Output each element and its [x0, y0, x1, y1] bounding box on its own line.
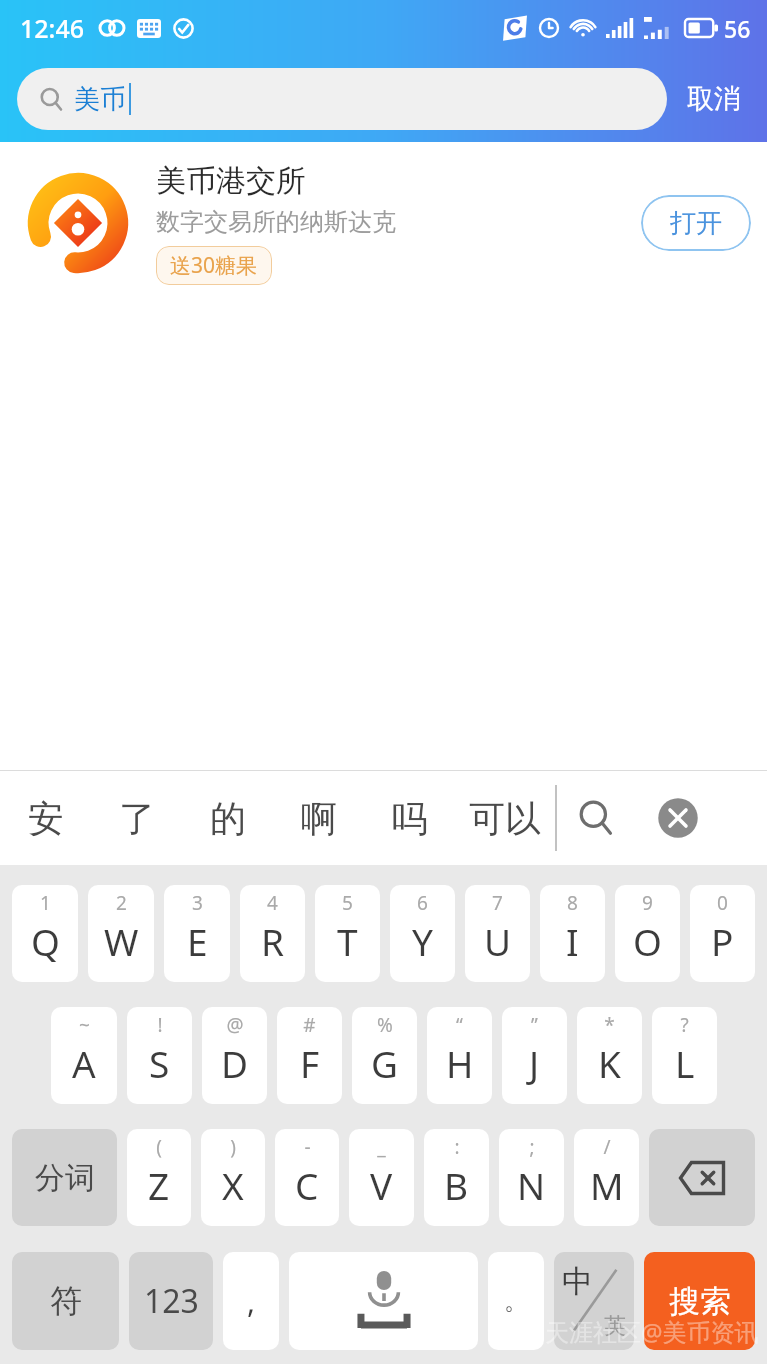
button[interactable]: 9 — [615, 885, 680, 982]
staticText: 啊 — [301, 796, 337, 841]
staticText: ) — [230, 1134, 236, 1160]
staticText: 取消 — [687, 82, 741, 116]
button[interactable]: 7 — [465, 885, 530, 982]
button[interactable]: 了 — [91, 771, 182, 865]
button[interactable]: % — [352, 1007, 417, 1104]
button[interactable]: 分词 — [12, 1129, 117, 1226]
button[interactable]: 美币 — [17, 68, 667, 130]
staticText: 英 — [604, 1312, 626, 1340]
button[interactable]: @ — [202, 1007, 267, 1104]
staticText: 安 — [28, 796, 64, 841]
staticText: S — [149, 1038, 170, 1088]
staticText: 12:46 — [20, 11, 85, 45]
staticText: 0 — [717, 890, 728, 916]
button[interactable]: _ — [349, 1129, 414, 1226]
button[interactable]: 吗 — [364, 771, 455, 865]
button[interactable]: : — [424, 1129, 489, 1226]
staticText: E — [187, 916, 208, 966]
button[interactable]: 打开 — [641, 195, 751, 251]
staticText: 2 — [116, 890, 127, 916]
button[interactable]: 6 — [390, 885, 455, 982]
staticText: 56 — [724, 13, 751, 44]
staticText: “ — [456, 1012, 463, 1038]
button[interactable]: Clear input — [635, 771, 721, 865]
button[interactable]: 取消 — [681, 76, 747, 122]
button[interactable]: ! — [127, 1007, 192, 1104]
button[interactable]: 。 — [488, 1252, 544, 1350]
button[interactable]: 符 — [12, 1252, 119, 1350]
staticText: D — [221, 1038, 249, 1088]
staticText: 中 — [562, 1262, 593, 1301]
staticText: H — [446, 1038, 474, 1088]
staticText: / — [603, 1134, 611, 1160]
staticText: F — [300, 1038, 320, 1088]
button[interactable]: / — [574, 1129, 639, 1226]
staticText: 打开 — [670, 207, 722, 240]
staticText: O — [633, 916, 662, 966]
button[interactable]: 8 — [540, 885, 605, 982]
button[interactable]: 2 — [88, 885, 154, 982]
staticText: X — [222, 1160, 244, 1210]
staticText: % — [377, 1012, 393, 1038]
staticText: 6 — [417, 890, 428, 916]
staticText: 吗 — [392, 796, 428, 841]
button[interactable]: 中 — [554, 1252, 634, 1350]
staticText: 。 — [504, 1286, 528, 1316]
button[interactable]: 123 — [129, 1252, 213, 1350]
button[interactable]: ) — [201, 1129, 265, 1226]
staticText: 5 — [342, 890, 353, 916]
button[interactable]: 搜索 — [644, 1252, 755, 1350]
button[interactable]: 的 — [182, 771, 273, 865]
staticText: 符 — [50, 1281, 82, 1321]
button[interactable]: ~ — [51, 1007, 117, 1104]
button[interactable]: Search — [557, 771, 635, 865]
staticText: K — [598, 1038, 621, 1088]
staticText: 天涯社区@美币资讯 — [545, 1315, 759, 1348]
button[interactable]: ( — [127, 1129, 191, 1226]
staticText: # — [303, 1012, 316, 1038]
staticText: 数字交易所的纳斯达克 — [156, 207, 396, 237]
staticText: 了 — [119, 796, 155, 841]
staticText: T — [337, 916, 358, 966]
button[interactable]: 4 — [240, 885, 305, 982]
staticText: P — [711, 916, 734, 966]
staticText: A — [72, 1038, 96, 1088]
button[interactable]: ? — [652, 1007, 717, 1104]
button[interactable]: Space and voice input — [289, 1252, 478, 1350]
button[interactable]: “ — [427, 1007, 492, 1104]
staticText: * — [604, 1012, 615, 1038]
button[interactable]: - — [275, 1129, 339, 1226]
staticText: B — [444, 1160, 469, 1210]
staticText: 搜索 — [669, 1282, 731, 1321]
staticText: 分词 — [35, 1159, 95, 1197]
button[interactable]: * — [577, 1007, 642, 1104]
button[interactable]: 美币港交所 — [0, 142, 767, 304]
staticText: 8 — [567, 890, 578, 916]
staticText: ” — [531, 1012, 538, 1038]
button[interactable]: 1 — [12, 885, 78, 982]
button[interactable]: 3 — [164, 885, 230, 982]
staticText: ! — [157, 1012, 163, 1038]
button[interactable]: 可以 — [455, 771, 555, 865]
staticText: ? — [680, 1012, 689, 1038]
button[interactable]: 安 — [0, 771, 91, 865]
button[interactable]: , — [223, 1252, 279, 1350]
staticText: ( — [156, 1134, 162, 1160]
staticText: 可以 — [469, 796, 541, 841]
button[interactable]: 5 — [315, 885, 380, 982]
staticText: 美币港交所 — [156, 162, 306, 200]
button[interactable]: Backspace — [649, 1129, 755, 1226]
staticText: @ — [226, 1012, 244, 1038]
button[interactable]: # — [277, 1007, 342, 1104]
staticText: , — [247, 1281, 256, 1322]
staticText: : — [454, 1134, 460, 1160]
staticText: M — [590, 1160, 624, 1210]
button[interactable]: ” — [502, 1007, 567, 1104]
staticText: 3 — [192, 890, 203, 916]
button[interactable]: 啊 — [273, 771, 364, 865]
staticText: I — [566, 916, 579, 966]
button[interactable]: 0 — [690, 885, 755, 982]
button[interactable]: ; — [499, 1129, 564, 1226]
staticText: J — [529, 1038, 540, 1088]
staticText: G — [371, 1038, 398, 1088]
